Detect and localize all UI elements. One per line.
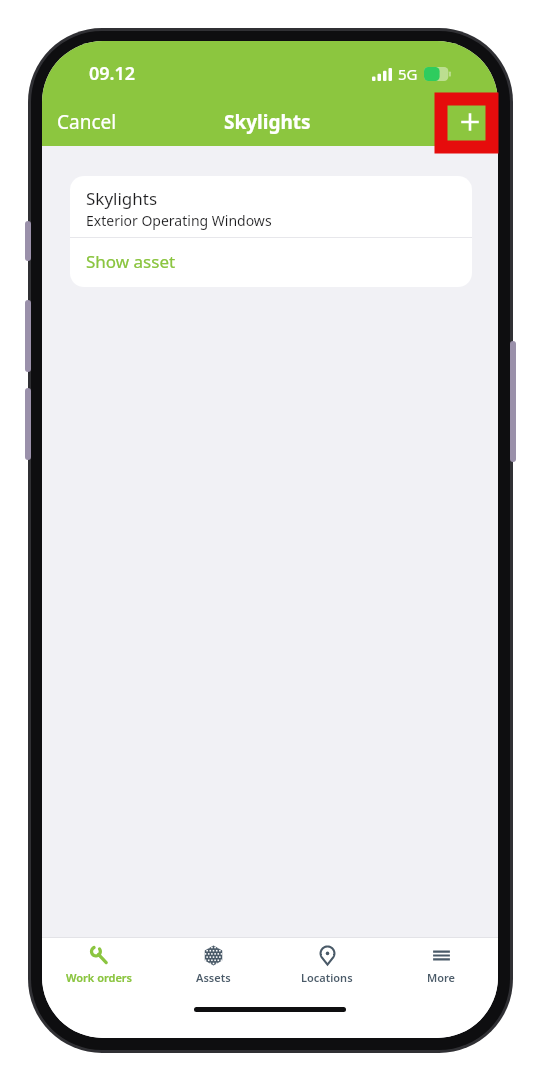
staticText: Assets [196, 970, 231, 985]
staticText: Cancel [57, 109, 117, 135]
button[interactable]: Assets [156, 938, 270, 999]
button[interactable]: Skylights [70, 176, 472, 237]
staticText: Work orders [66, 970, 133, 985]
staticText: Show asset [86, 250, 176, 273]
staticText: 5G [398, 64, 418, 84]
button[interactable]: Work orders [42, 938, 156, 999]
button[interactable]: More [384, 938, 498, 999]
button[interactable]: Cancel [42, 98, 132, 145]
button[interactable]: Show asset [70, 238, 472, 287]
staticText: Locations [301, 970, 353, 985]
staticText: Skylights [86, 187, 158, 210]
button[interactable]: Locations [270, 938, 384, 999]
button[interactable]: Add [446, 98, 493, 145]
staticText: Skylights [224, 109, 311, 135]
staticText: More [427, 970, 455, 985]
staticText: 09.12 [89, 61, 136, 86]
staticText: Exterior Operating Windows [86, 211, 272, 230]
